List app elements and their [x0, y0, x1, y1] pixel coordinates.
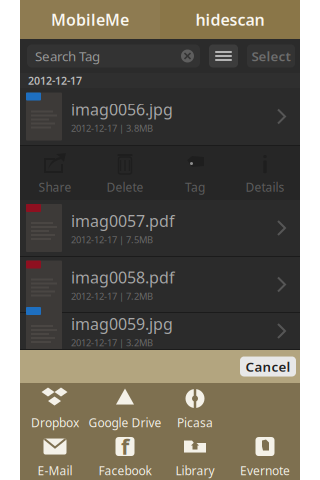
button[interactable]: Select — [247, 44, 295, 67]
staticText: MobileMe — [51, 9, 129, 30]
staticText: Evernote — [240, 462, 290, 478]
staticText: 2012-12-17 | 3.2MB — [71, 336, 153, 349]
button[interactable]: Tag — [160, 146, 230, 200]
staticText: imag0058.pdf — [71, 267, 175, 288]
staticText: Share — [38, 179, 71, 195]
staticText: E-Mail — [37, 462, 72, 478]
button[interactable]: imag0056.jpg — [20, 88, 300, 146]
button[interactable]: Share — [20, 146, 90, 200]
staticText: Delete — [106, 179, 143, 195]
button[interactable]: f — [90, 431, 160, 479]
button[interactable]: MobileMe — [20, 0, 160, 39]
staticText: f — [121, 432, 129, 461]
staticText: imag0057.pdf — [71, 210, 175, 231]
staticText: Picasa — [177, 414, 213, 430]
button[interactable]: Cancel — [240, 356, 296, 376]
staticText: 2012-12-17 | 3.8MB — [71, 122, 153, 134]
button[interactable]: imag0058.pdf — [20, 257, 300, 313]
button[interactable]: Library — [160, 431, 230, 479]
staticText: Dropbox — [31, 414, 79, 430]
staticText: Search Tag — [35, 47, 100, 65]
staticText: Library — [175, 462, 214, 478]
button[interactable]: imag0059.jpg — [20, 313, 300, 350]
button[interactable]: hidescan — [160, 0, 300, 39]
staticText: Details — [245, 179, 284, 195]
staticText: Cancel — [245, 358, 290, 375]
staticText: Google Drive — [88, 414, 161, 430]
button[interactable]: Picasa — [160, 383, 230, 431]
button[interactable]: Delete — [90, 146, 160, 200]
button[interactable]: Google Drive — [90, 383, 160, 431]
staticText: Select — [251, 47, 290, 65]
button[interactable]: imag0057.pdf — [20, 200, 300, 257]
staticText: imag0059.jpg — [71, 313, 173, 334]
staticText: imag0056.jpg — [71, 99, 173, 120]
staticText: hidescan — [195, 9, 264, 30]
button[interactable]: Evernote — [230, 431, 300, 479]
button[interactable]: E-Mail — [20, 431, 90, 479]
staticText: 2012-12-17 | 7.2MB — [71, 290, 153, 302]
staticText: Facebook — [98, 462, 151, 478]
staticText: Tag — [185, 179, 205, 195]
button[interactable]: Details — [230, 146, 300, 200]
staticText: 2012-12-17 — [28, 73, 82, 88]
staticText: 2012-12-17 | 7.5MB — [71, 233, 153, 246]
button[interactable]: Dropbox — [20, 383, 90, 431]
button[interactable]: List options — [209, 44, 238, 67]
